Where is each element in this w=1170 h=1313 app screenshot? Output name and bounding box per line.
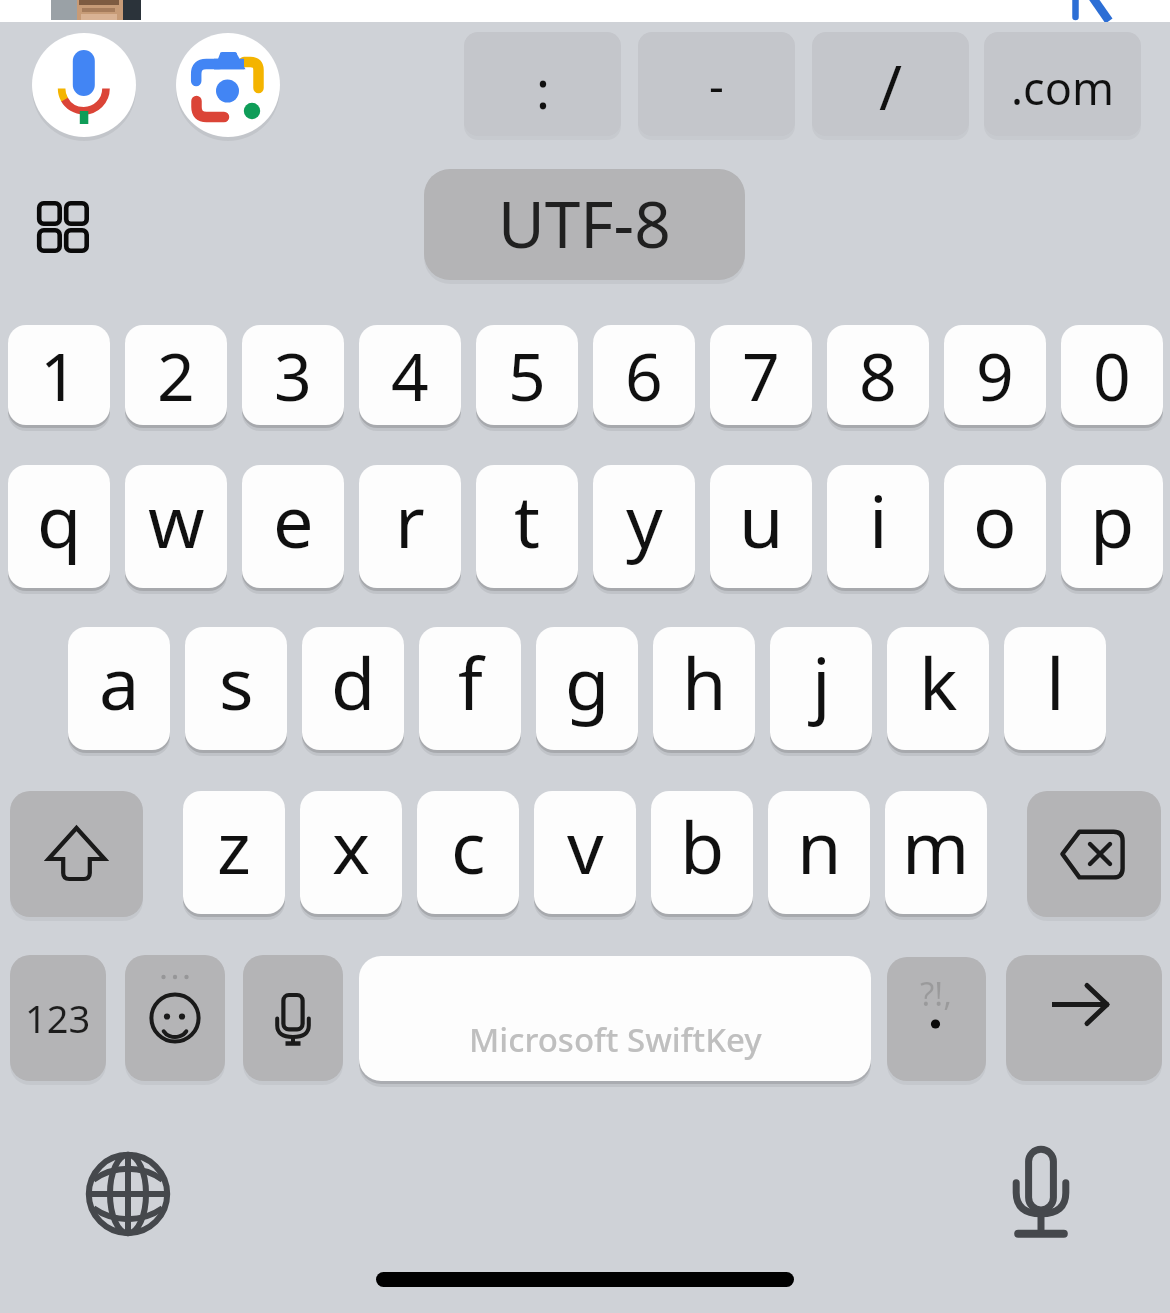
- staticText: 9: [976, 330, 1014, 420]
- button[interactable]: m: [885, 791, 987, 914]
- button[interactable]: h: [653, 627, 755, 750]
- staticText: 5: [508, 330, 546, 420]
- button[interactable]: x: [300, 791, 402, 914]
- staticText: v: [567, 797, 604, 895]
- button[interactable]: -: [638, 32, 795, 136]
- staticText: ?!,: [920, 971, 953, 1016]
- button[interactable]: Microphone: [1010, 1146, 1072, 1238]
- button[interactable]: Enter: [1006, 955, 1162, 1081]
- button[interactable]: 4: [359, 325, 461, 425]
- button[interactable]: y: [593, 465, 695, 588]
- staticText: m: [902, 797, 970, 895]
- button[interactable]: a: [68, 627, 170, 750]
- button[interactable]: o: [944, 465, 1046, 588]
- button[interactable]: Voice input: [243, 955, 343, 1081]
- staticText: 2: [157, 330, 195, 420]
- staticText: y: [626, 471, 663, 569]
- staticText: n: [797, 797, 842, 895]
- staticText: a: [99, 633, 140, 731]
- staticText: j: [812, 633, 831, 731]
- button[interactable]: Shift: [10, 791, 143, 917]
- staticText: s: [219, 633, 254, 731]
- button[interactable]: g: [536, 627, 638, 750]
- button[interactable]: j: [770, 627, 872, 750]
- staticText: b: [680, 797, 725, 895]
- button[interactable]: v: [534, 791, 636, 914]
- button[interactable]: /: [812, 32, 969, 136]
- staticText: /: [879, 44, 903, 128]
- staticText: d: [331, 633, 376, 731]
- staticText: .com: [1011, 57, 1114, 118]
- button[interactable]: Microsoft SwiftKey: [359, 956, 871, 1081]
- button[interactable]: :: [464, 32, 621, 136]
- button[interactable]: .com: [984, 32, 1141, 136]
- button[interactable]: i: [827, 465, 929, 588]
- staticText: q: [37, 471, 82, 569]
- staticText: g: [565, 633, 610, 731]
- staticText: -: [709, 53, 724, 116]
- staticText: Microsoft SwiftKey: [469, 1017, 762, 1062]
- staticText: e: [273, 471, 314, 569]
- staticText: 1: [40, 330, 78, 420]
- button[interactable]: b: [651, 791, 753, 914]
- button[interactable]: 7: [710, 325, 812, 425]
- staticText: :: [536, 53, 550, 124]
- button[interactable]: 123: [10, 955, 106, 1081]
- button[interactable]: d: [302, 627, 404, 750]
- button[interactable]: r: [359, 465, 461, 588]
- staticText: w: [148, 471, 205, 569]
- button[interactable]: UTF-8: [424, 169, 745, 280]
- button[interactable]: Emoji: [125, 955, 225, 1081]
- button[interactable]: 8: [827, 325, 929, 425]
- button[interactable]: n: [768, 791, 870, 914]
- staticText: z: [217, 797, 251, 895]
- staticText: 7: [742, 330, 780, 420]
- button[interactable]: f: [419, 627, 521, 750]
- button[interactable]: Change language: [88, 1154, 168, 1234]
- staticText: 0: [1093, 330, 1131, 420]
- staticText: k: [919, 633, 958, 731]
- staticText: h: [682, 633, 727, 731]
- button[interactable]: u: [710, 465, 812, 588]
- staticText: p: [1090, 471, 1135, 569]
- button[interactable]: 6: [593, 325, 695, 425]
- button[interactable]: z: [183, 791, 285, 914]
- staticText: t: [514, 471, 540, 569]
- staticText: 4: [391, 330, 429, 420]
- staticText: 6: [625, 330, 663, 420]
- button[interactable]: 1: [8, 325, 110, 425]
- button[interactable]: Toolbar: [33, 197, 95, 259]
- staticText: f: [458, 633, 483, 731]
- button[interactable]: 9: [944, 325, 1046, 425]
- button[interactable]: 5: [476, 325, 578, 425]
- staticText: u: [739, 471, 784, 569]
- button[interactable]: 3: [242, 325, 344, 425]
- staticText: 123: [25, 992, 91, 1044]
- button[interactable]: Voice search: [32, 33, 136, 137]
- button[interactable]: t: [476, 465, 578, 588]
- button[interactable]: l: [1004, 627, 1106, 750]
- staticText: x: [332, 797, 371, 895]
- button[interactable]: e: [242, 465, 344, 588]
- staticText: c: [451, 797, 486, 895]
- staticText: l: [1046, 633, 1065, 731]
- staticText: r: [395, 471, 425, 569]
- button[interactable]: w: [125, 465, 227, 588]
- staticText: o: [973, 471, 1017, 569]
- staticText: 8: [859, 330, 897, 420]
- button[interactable]: c: [417, 791, 519, 914]
- button[interactable]: 0: [1061, 325, 1163, 425]
- staticText: i: [869, 471, 888, 569]
- button[interactable]: Punctuation: [887, 957, 986, 1081]
- button[interactable]: s: [185, 627, 287, 750]
- button[interactable]: p: [1061, 465, 1163, 588]
- staticText: UTF-8: [498, 180, 671, 267]
- button[interactable]: k: [887, 627, 989, 750]
- button[interactable]: q: [8, 465, 110, 588]
- button[interactable]: 2: [125, 325, 227, 425]
- button[interactable]: Backspace: [1027, 791, 1161, 917]
- staticText: 3: [274, 330, 312, 420]
- button[interactable]: Google Lens: [176, 33, 280, 137]
